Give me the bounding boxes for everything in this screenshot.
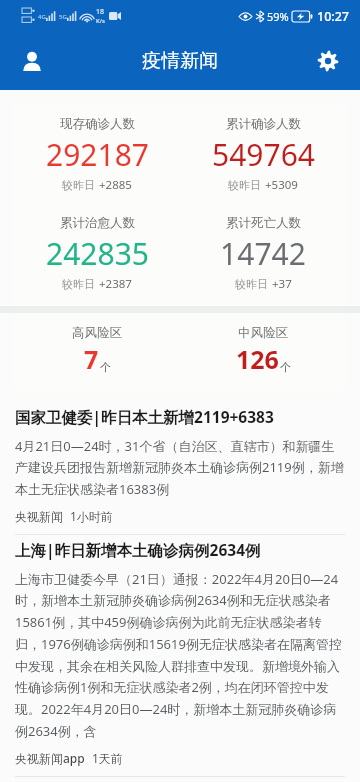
- button[interactable]: 现存确诊人数: [14, 102, 346, 306]
- staticText: 1天前: [92, 750, 123, 766]
- staticText: 累计确诊人数: [226, 116, 301, 132]
- staticText: +37: [272, 276, 292, 292]
- staticText: 549764: [212, 134, 315, 175]
- staticText: 现存确诊人数: [60, 116, 135, 132]
- button[interactable]: Profile: [12, 41, 52, 81]
- staticText: 1小时前: [70, 508, 113, 524]
- staticText: 14742: [220, 233, 306, 274]
- staticText: 4月21日0—24时，31个省（自治区、直辖市）和新疆生产建设兵团报告新增新冠肺…: [15, 437, 345, 498]
- staticText: 18: [96, 7, 105, 17]
- staticText: 累计治愈人数: [60, 215, 135, 231]
- staticText: 10:27: [317, 8, 350, 25]
- staticText: 较昨日: [228, 178, 261, 192]
- staticText: 央视新闻: [15, 509, 63, 524]
- staticText: 较昨日: [62, 178, 95, 192]
- staticText: 59%: [267, 9, 289, 24]
- button[interactable]: 国家卫健委|昨日本土新增2119+6383: [0, 402, 360, 535]
- button[interactable]: 高风险区: [14, 313, 346, 392]
- staticText: 累计死亡人数: [226, 215, 301, 231]
- staticText: 242835: [46, 233, 149, 274]
- staticText: 上海|昨日新增本土确诊病例2634例: [15, 539, 261, 560]
- staticText: 高风险区: [72, 325, 122, 341]
- staticText: 较昨日: [62, 277, 95, 291]
- staticText: K/s: [96, 17, 105, 25]
- staticText: +5309: [265, 177, 298, 193]
- staticText: 292187: [46, 134, 149, 175]
- staticText: 5G: [59, 13, 67, 21]
- staticText: 疫情新闻: [142, 49, 218, 73]
- button[interactable]: 上海|昨日新增本土确诊病例2634例: [0, 535, 360, 777]
- staticText: +2387: [99, 276, 132, 292]
- staticText: 国家卫健委|昨日本土新增2119+6383: [15, 406, 274, 427]
- staticText: 较昨日: [235, 277, 268, 291]
- staticText: 中风险区: [238, 325, 288, 341]
- staticText: 个: [100, 360, 111, 374]
- staticText: 个: [280, 360, 291, 374]
- button[interactable]: Settings: [308, 41, 348, 81]
- staticText: 上海市卫健委今早（21日）通报：2022年4月20日0—24时，新增本土新冠肺炎…: [15, 570, 345, 740]
- staticText: 央视新闻app: [15, 750, 85, 766]
- staticText: 7: [84, 342, 99, 376]
- staticText: +2885: [99, 177, 132, 193]
- staticText: 4G: [38, 13, 46, 21]
- staticText: 126: [236, 342, 279, 376]
